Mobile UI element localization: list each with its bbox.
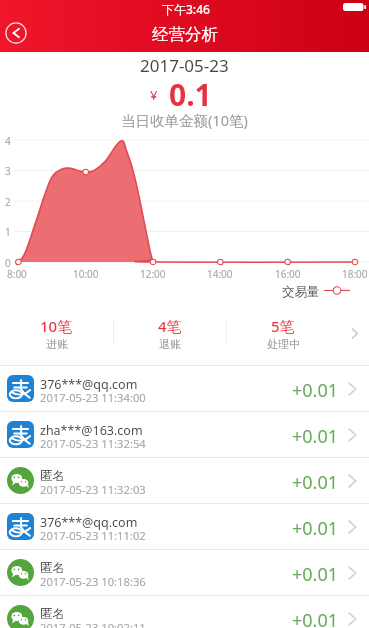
staticText: 退账 (159, 337, 181, 351)
staticText: 处理中 (267, 337, 300, 351)
staticText: +0.01 (292, 608, 339, 628)
staticText: 10:00 (73, 267, 99, 281)
staticText: 2017-05-23 (140, 54, 229, 77)
staticText: 12:00 (140, 267, 166, 281)
staticText: 0 (5, 256, 11, 270)
button[interactable]: 376***@qq.com (0, 366, 369, 411)
staticText: 18:00 (342, 267, 368, 281)
button[interactable]: 匿名 (0, 596, 369, 628)
staticText: 进账 (46, 337, 68, 351)
staticText: 5笔 (271, 316, 295, 336)
staticText: 当日收单金额(10笔) (121, 110, 248, 130)
staticText: 2017-05-23 10:18:36 (40, 574, 146, 589)
staticText: 经营分析 (152, 24, 218, 45)
staticText: 下午3:46 (162, 1, 210, 17)
staticText: 2017-05-23 11:34:00 (40, 390, 146, 405)
staticText: 匿名 (40, 606, 65, 622)
staticText: +0.01 (292, 470, 339, 495)
staticText: 10笔 (40, 316, 73, 336)
staticText: 2 (5, 195, 11, 209)
staticText: ¥ (150, 86, 158, 104)
staticText: 8:00 (7, 267, 27, 281)
staticText: 2017-05-23 11:32:54 (40, 436, 146, 451)
staticText: 4笔 (158, 316, 182, 336)
staticText: +0.01 (292, 516, 339, 541)
staticText: 2017-05-23 11:11:02 (40, 528, 146, 543)
staticText: 2017-05-23 11:32:03 (40, 482, 146, 497)
button[interactable]: 匿名 (0, 550, 369, 595)
staticText: 3 (5, 164, 11, 178)
staticText: 匿名 (40, 468, 65, 484)
staticText: 2017-05-23 10:02:11 (40, 620, 146, 628)
button[interactable]: 376***@qq.com (0, 504, 369, 549)
staticText: +0.01 (292, 424, 339, 449)
staticText: 匿名 (40, 560, 65, 576)
button[interactable]: zha***@163.com (0, 412, 369, 457)
staticText: 交易量 (282, 284, 320, 298)
button[interactable]: Back (2, 19, 30, 47)
staticText: +0.01 (292, 562, 339, 587)
staticText: 376***@qq.com (40, 376, 138, 393)
button[interactable]: 10笔 (0, 304, 369, 362)
staticText: 376***@qq.com (40, 514, 138, 531)
staticText: 14:00 (207, 267, 233, 281)
button[interactable]: 匿名 (0, 458, 369, 503)
staticText: zha***@163.com (40, 422, 143, 439)
staticText: +0.01 (292, 378, 339, 403)
staticText: 16:00 (275, 267, 301, 281)
staticText: 4 (5, 134, 11, 148)
staticText: 0.1 (169, 74, 212, 115)
staticText: 1 (5, 225, 11, 239)
